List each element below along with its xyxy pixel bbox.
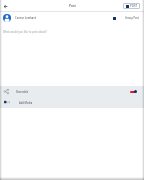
staticText: Shareable — [16, 90, 29, 94]
staticText: What would you like to post about? — [3, 30, 47, 34]
button[interactable]: Back — [1, 2, 10, 11]
button[interactable]: POST — [123, 3, 140, 9]
staticText: Post — [69, 4, 76, 8]
staticText: POST — [130, 4, 138, 8]
button[interactable]: Group Post — [113, 16, 139, 20]
staticText: Group Post — [125, 16, 139, 20]
staticText: Connor Lombard — [15, 16, 37, 20]
button[interactable]: Add Media — [0, 97, 144, 108]
staticText: Add Media — [19, 101, 33, 105]
button[interactable]: Shareable — [0, 86, 144, 97]
button[interactable]: Shareable toggle — [130, 90, 137, 93]
